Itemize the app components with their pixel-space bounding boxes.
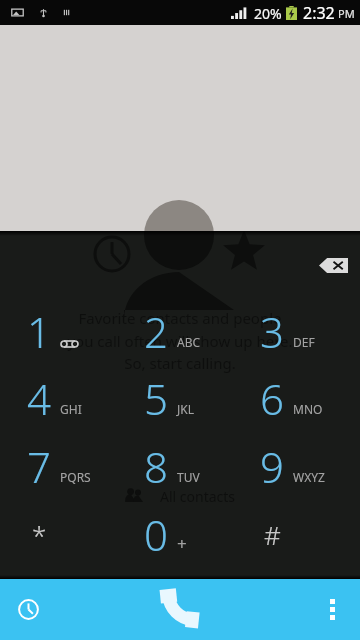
staticText: GHI bbox=[60, 401, 82, 417]
staticText: DEF bbox=[293, 334, 315, 350]
staticText: 9 bbox=[260, 438, 284, 495]
staticText: * bbox=[32, 517, 47, 552]
button[interactable]: 8 bbox=[122, 435, 239, 502]
button[interactable]: 7 bbox=[5, 435, 122, 502]
staticText: ABC bbox=[177, 334, 201, 350]
button[interactable]: 3 bbox=[238, 300, 355, 367]
staticText: 1 bbox=[27, 303, 51, 360]
staticText: All contacts bbox=[160, 487, 236, 506]
staticText: 3 bbox=[260, 303, 284, 360]
staticText: 2 bbox=[144, 303, 168, 360]
button[interactable]: 9 bbox=[238, 435, 355, 502]
staticText: PM bbox=[338, 6, 355, 21]
staticText: JKL bbox=[177, 401, 194, 417]
button[interactable]: 1 bbox=[5, 300, 122, 367]
button[interactable]: Call bbox=[144, 579, 216, 640]
staticText: 5 bbox=[144, 370, 168, 427]
staticText: WXYZ bbox=[293, 469, 325, 485]
staticText: 20% bbox=[254, 4, 282, 23]
staticText: 6 bbox=[260, 370, 284, 427]
button[interactable]: Recents bbox=[6, 579, 50, 640]
button[interactable]: More options bbox=[304, 579, 360, 640]
staticText: + bbox=[177, 532, 187, 555]
button[interactable]: 2 bbox=[122, 300, 239, 367]
staticText: PQRS bbox=[60, 469, 91, 485]
staticText: TUV bbox=[177, 469, 200, 485]
staticText: # bbox=[264, 517, 281, 552]
staticText: 7 bbox=[27, 438, 51, 495]
staticText: Favorite contacts and people you call of… bbox=[67, 308, 293, 373]
button[interactable]: 4 bbox=[5, 367, 122, 434]
staticText: 8 bbox=[144, 438, 168, 495]
button[interactable]: 5 bbox=[122, 367, 239, 434]
button[interactable]: # bbox=[238, 503, 355, 570]
button[interactable]: 6 bbox=[238, 367, 355, 434]
staticText: MNO bbox=[293, 401, 323, 417]
staticText: 0 bbox=[144, 506, 168, 563]
button[interactable]: 0 bbox=[122, 503, 239, 570]
staticText: 2:32 bbox=[303, 2, 335, 24]
staticText: 4 bbox=[27, 370, 51, 427]
button[interactable]: * bbox=[5, 503, 122, 570]
button[interactable]: Delete bbox=[313, 247, 353, 283]
